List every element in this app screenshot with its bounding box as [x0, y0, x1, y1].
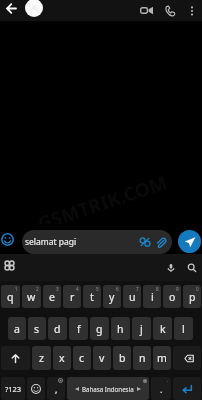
button[interactable]: q: [1, 285, 20, 308]
button[interactable]: [27, 377, 45, 400]
button[interactable]: p: [183, 285, 201, 308]
button[interactable]: w: [22, 285, 41, 308]
button[interactable]: v: [93, 346, 111, 370]
staticText: .: [160, 383, 163, 395]
button[interactable]: b: [113, 346, 131, 370]
button[interactable]: [1, 346, 30, 370]
staticText: o: [169, 290, 176, 304]
staticText: l: [182, 322, 185, 336]
staticText: i: [151, 290, 154, 304]
staticText: 1: [15, 286, 18, 292]
button[interactable]: Send: [178, 230, 201, 253]
staticText: q: [7, 290, 14, 304]
staticText: ?123: [5, 384, 22, 394]
staticText: x: [59, 351, 65, 365]
staticText: Bahasa Indonesia: [82, 385, 134, 393]
button[interactable]: d: [48, 317, 67, 340]
button[interactable]: h: [111, 317, 130, 340]
button[interactable]: ?123: [1, 377, 25, 400]
staticText: e: [49, 290, 55, 304]
staticText: 9: [176, 286, 179, 292]
staticText: 8: [156, 286, 159, 292]
button[interactable]: Attach: [155, 236, 167, 248]
button[interactable]: l: [174, 317, 193, 340]
staticText: ,: [55, 383, 58, 395]
button[interactable]: x: [53, 346, 71, 370]
staticText: 4: [76, 286, 79, 292]
button[interactable]: e: [43, 285, 61, 308]
button[interactable]: ,: [47, 377, 65, 400]
staticText: y: [109, 290, 115, 304]
staticText: 3: [56, 286, 59, 292]
button[interactable]: m: [153, 346, 171, 370]
button[interactable]: s: [28, 317, 46, 340]
staticText: f: [77, 322, 81, 336]
staticText: v: [99, 351, 105, 365]
staticText: GSMTRIK.COM: [34, 169, 171, 237]
button[interactable]: Voice input: [164, 261, 177, 274]
button[interactable]: k: [153, 317, 172, 340]
button[interactable]: [173, 346, 201, 370]
button[interactable]: y: [103, 285, 121, 308]
staticText: g: [96, 322, 103, 336]
staticText: d: [54, 322, 61, 336]
button[interactable]: selamat pagi: [22, 230, 172, 254]
staticText: t: [90, 290, 94, 304]
button[interactable]: j: [132, 317, 151, 340]
button[interactable]: f: [69, 317, 88, 340]
staticText: c: [79, 351, 85, 365]
button[interactable]: Bahasa Indonesia: [67, 377, 149, 400]
button[interactable]: c: [73, 346, 91, 370]
button[interactable]: o: [163, 285, 181, 308]
staticText: r: [70, 290, 75, 304]
staticText: m: [157, 351, 167, 365]
staticText: 2: [36, 286, 39, 292]
button[interactable]: .: [151, 377, 171, 400]
staticText: s: [34, 322, 40, 336]
staticText: ·: [167, 378, 169, 384]
button[interactable]: t: [83, 285, 101, 308]
staticText: u: [129, 290, 136, 304]
button[interactable]: Stickers: [139, 236, 151, 248]
staticText: 0: [196, 286, 199, 292]
button[interactable]: Keyboard toolbar: [5, 261, 14, 270]
staticText: a: [14, 322, 20, 336]
staticText: 6: [116, 286, 119, 292]
button[interactable]: Emoji: [1, 233, 14, 246]
button[interactable]: Video call: [138, 2, 155, 19]
button[interactable]: [173, 377, 201, 400]
button[interactable]: Search: [185, 261, 198, 274]
staticText: selamat pagi: [25, 236, 139, 248]
button[interactable]: Contact profile: [25, 0, 43, 17]
button[interactable]: g: [90, 317, 109, 340]
button[interactable]: a: [8, 317, 26, 340]
staticText: h: [117, 322, 124, 336]
staticText: 7: [136, 286, 139, 292]
staticText: k: [160, 322, 166, 336]
staticText: z: [39, 351, 44, 365]
staticText: 5: [96, 286, 99, 292]
button[interactable]: More options: [184, 3, 199, 18]
button[interactable]: i: [143, 285, 161, 308]
button[interactable]: Back: [3, 0, 19, 16]
button[interactable]: Call: [161, 2, 178, 19]
staticText: b: [119, 351, 126, 365]
staticText: w: [27, 290, 36, 304]
button[interactable]: n: [133, 346, 151, 370]
staticText: j: [140, 322, 143, 336]
staticText: p: [189, 290, 196, 304]
staticText: n: [139, 351, 146, 365]
button[interactable]: u: [123, 285, 141, 308]
button[interactable]: z: [32, 346, 51, 370]
button[interactable]: r: [63, 285, 81, 308]
